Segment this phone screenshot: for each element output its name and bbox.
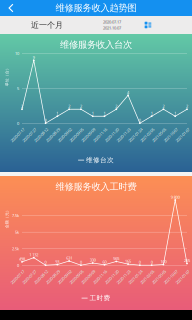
staticText: 330 [90, 257, 96, 263]
staticText: 2 [115, 104, 117, 109]
staticText: 0 [17, 263, 19, 268]
staticText: 2 [186, 104, 188, 109]
staticText: 2020-11-20 [103, 274, 121, 280]
staticText: 2021-10-07 [162, 274, 180, 280]
staticText: 2021-01-07 [173, 274, 191, 280]
staticText: 2020-08-29 [44, 132, 62, 138]
staticText: 498 [19, 256, 25, 262]
staticText: 1 [174, 111, 176, 116]
staticText: 2020-08-12 [32, 274, 50, 280]
staticText: 2020-11-16 [91, 274, 109, 280]
staticText: 165 [125, 258, 131, 264]
staticText: 7.5k [12, 213, 19, 218]
staticText: 2020-08-29 [44, 274, 62, 280]
staticText: 2020-11-23 [115, 274, 133, 280]
staticText: 60 [102, 259, 106, 264]
staticText: 93 [55, 259, 59, 264]
staticText: 2021-01-07 [173, 132, 191, 138]
staticText: 2.5k [12, 246, 19, 251]
staticText: 2020-09-02 [56, 132, 74, 138]
staticText: 0 [45, 118, 47, 123]
staticText: 2021-05-05 [150, 274, 168, 280]
staticText: 5 [17, 86, 19, 91]
staticText: 2 [162, 104, 164, 109]
staticText: 631 [66, 255, 72, 261]
staticText: 0 [139, 118, 141, 123]
staticText: 9 800 [171, 194, 180, 200]
staticText: 维修服务收入台次 [60, 39, 132, 50]
button[interactable]: Back [0, 0, 22, 16]
staticText: 2 [80, 104, 82, 109]
staticText: 2020-07-17 [8, 132, 26, 138]
staticText: 0 [45, 260, 47, 265]
staticText: 2 [21, 104, 23, 109]
staticText: 1 [151, 111, 153, 116]
staticText: 2020-11-20 [103, 132, 121, 138]
staticText: 0 [139, 260, 141, 265]
staticText: 金额（元） [0, 216, 17, 221]
staticText: 维修服务收入工时费 [55, 181, 136, 192]
staticText: 2021-02-05 [138, 132, 156, 138]
staticText: 1 [103, 111, 105, 116]
staticText: 10 [15, 51, 19, 56]
staticText: 维修台次 [86, 156, 114, 164]
staticText: 4 [127, 90, 129, 95]
staticText: 2020-11-23 [115, 132, 133, 138]
staticText: 2020-09-05 [67, 132, 85, 138]
staticText: 2020-09-02 [56, 274, 74, 280]
staticText: 2021-05-05 [150, 132, 168, 138]
staticText: 0 [17, 121, 19, 126]
staticText: 1 [56, 111, 58, 116]
staticText: 2020-07-27 [20, 274, 38, 280]
button[interactable]: Filter [139, 16, 157, 34]
staticText: 2020-09-09 [79, 132, 97, 138]
staticText: 100 [160, 259, 166, 264]
staticText: 1 132 [29, 252, 38, 257]
staticText: 2020-07-17 [8, 274, 26, 280]
staticText: 5k [15, 229, 19, 235]
staticText: 2020-11-16 [91, 132, 109, 138]
staticText: 工时费 [89, 294, 110, 302]
staticText: 维修服务收入趋势图 [55, 2, 136, 14]
staticText: 2020-07-17 [103, 19, 121, 25]
staticText: 2020-07-27 [20, 132, 38, 138]
staticText: 255 [184, 258, 190, 263]
staticText: 0 [151, 260, 153, 265]
staticText: 2021-10-07 [103, 25, 121, 31]
staticText: 2021-01-24 [126, 274, 144, 280]
staticText: 2 [68, 104, 70, 109]
staticText: 2021-10-07 [162, 132, 180, 138]
staticText: 2020-08-12 [32, 132, 50, 138]
button[interactable]: 近一个月 [24, 16, 70, 34]
staticText: 9 [33, 55, 35, 60]
staticText: 565 [113, 256, 119, 261]
staticText: 0 [80, 260, 82, 265]
staticText: 1 [92, 111, 94, 116]
staticText: 2020-09-09 [79, 274, 97, 280]
staticText: 2021-01-24 [126, 132, 144, 138]
staticText: 近一个月 [31, 20, 63, 30]
staticText: 单位（台） [0, 74, 17, 79]
staticText: 2020-09-05 [67, 274, 85, 280]
staticText: 2021-02-05 [138, 274, 156, 280]
